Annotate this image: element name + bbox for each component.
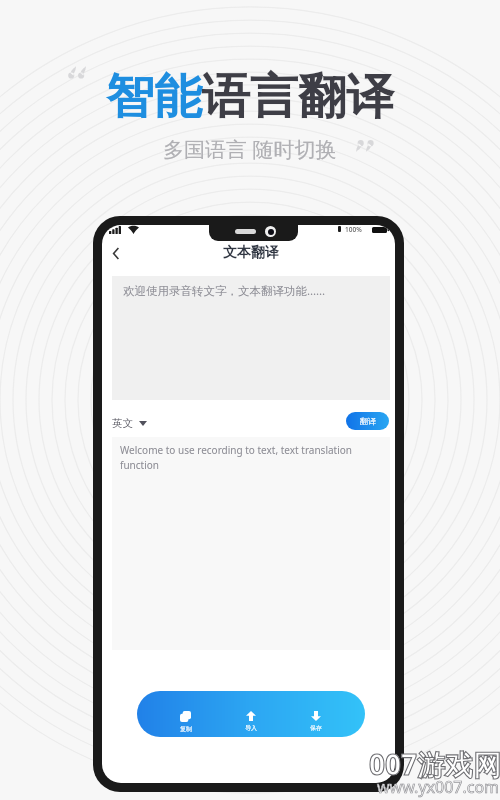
staticText: 英文	[112, 417, 133, 430]
staticText: 欢迎使用录音转文字，文本翻译功能……	[123, 283, 326, 299]
staticText: Welcome to use recording to text, text t…	[120, 443, 368, 472]
staticText: www.yx007.com	[377, 776, 500, 798]
staticText: www.yx007.com	[377, 776, 500, 798]
staticText: 007游戏网	[369, 745, 500, 783]
staticText: 100%	[345, 225, 362, 234]
button[interactable]: 复制	[153, 691, 218, 737]
button[interactable]: 保存	[283, 691, 348, 737]
button[interactable]: 翻译	[346, 412, 389, 430]
staticText: 智能语言翻译	[106, 67, 394, 127]
button[interactable]: 导入	[218, 691, 283, 737]
button[interactable]: 英文	[110, 413, 149, 434]
staticText: 翻译	[360, 416, 376, 426]
staticText: 保存	[310, 724, 322, 732]
staticText: 多国语言 随时切换	[163, 135, 337, 164]
staticText: 文本翻译	[223, 244, 279, 262]
staticText: 复制	[180, 725, 192, 733]
staticText: 007游戏网	[369, 745, 500, 783]
staticText: 导入	[245, 724, 257, 732]
button[interactable]: Back	[106, 243, 126, 263]
